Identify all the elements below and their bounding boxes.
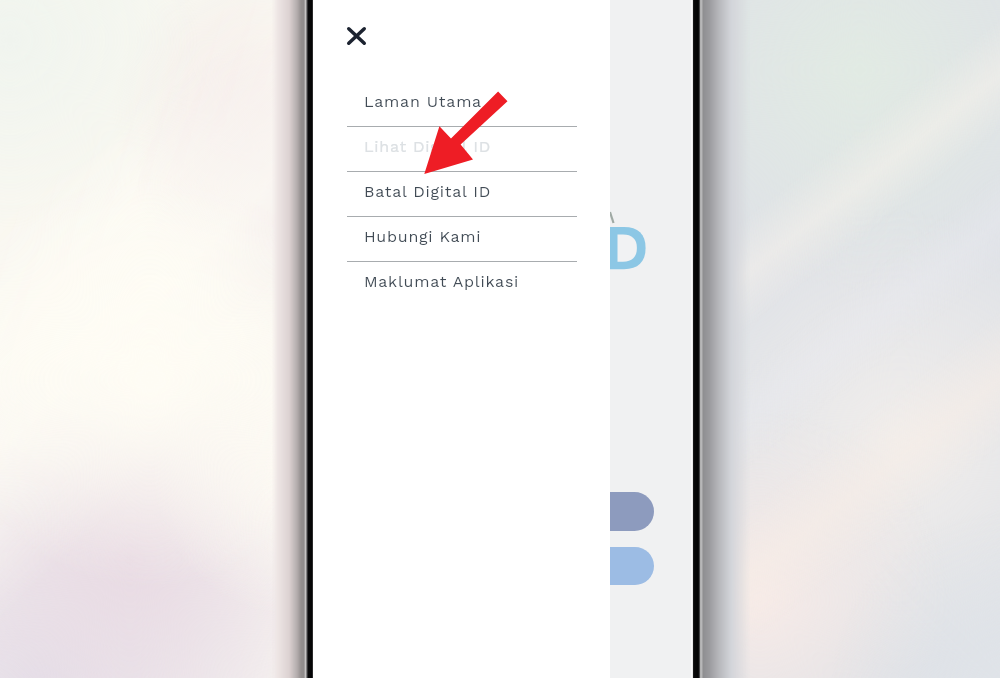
button[interactable]: Close menu — [333, 13, 379, 59]
button[interactable] — [581, 547, 654, 585]
button[interactable]: Maklumat Aplikasi — [347, 269, 576, 293]
staticText: Laman Utama — [364, 92, 482, 111]
staticText: Maklumat Aplikasi — [364, 272, 520, 291]
button[interactable]: Lihat Digital ID — [347, 134, 576, 158]
button[interactable]: Laman Utama — [347, 89, 576, 113]
staticText: Batal Digital ID — [364, 182, 492, 201]
button[interactable] — [581, 492, 654, 531]
button[interactable]: Batal Digital ID — [347, 179, 576, 203]
staticText: Hubungi Kami — [364, 227, 482, 246]
staticText: Lihat Digital ID — [364, 137, 491, 156]
button[interactable]: Hubungi Kami — [347, 224, 576, 248]
